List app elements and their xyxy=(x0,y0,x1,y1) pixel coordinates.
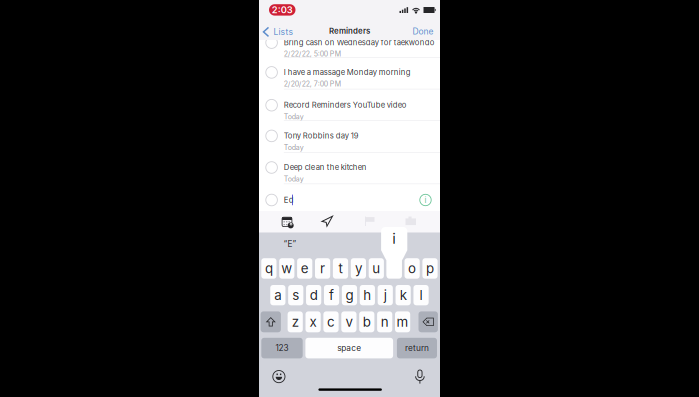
staticText: “E” xyxy=(283,239,296,249)
staticText: Tony Robbins day 19 xyxy=(284,131,359,140)
staticText: Done xyxy=(412,26,433,37)
button[interactable]: w xyxy=(279,258,294,279)
button[interactable]: o xyxy=(404,258,420,279)
staticText: return xyxy=(405,343,429,353)
staticText: m xyxy=(397,314,409,330)
button[interactable]: z xyxy=(288,311,303,332)
button[interactable]: Emoji xyxy=(273,370,285,383)
button[interactable]: Lists xyxy=(262,26,298,37)
staticText: o xyxy=(408,260,416,276)
staticText: Today xyxy=(284,112,304,121)
staticText: z xyxy=(292,314,299,330)
staticText: t xyxy=(338,260,342,276)
staticText: q xyxy=(265,260,273,276)
staticText: 2/20/22, 7:00 PM xyxy=(284,80,341,88)
button[interactable]: a xyxy=(270,285,285,305)
staticText: u xyxy=(372,260,380,276)
staticText: i xyxy=(392,230,396,247)
staticText: a xyxy=(274,287,281,303)
button[interactable]: r xyxy=(315,258,330,279)
staticText: x xyxy=(310,314,317,330)
staticText: I have a massage Monday morning xyxy=(284,68,411,77)
staticText: n xyxy=(381,314,389,330)
staticText: h xyxy=(363,287,371,303)
button[interactable]: Date and time xyxy=(281,215,293,227)
button[interactable]: u xyxy=(369,258,384,279)
staticText: v xyxy=(345,314,352,330)
button[interactable]: e xyxy=(297,258,312,279)
staticText: y xyxy=(355,260,362,276)
button[interactable]: f xyxy=(324,285,339,305)
button[interactable]: k xyxy=(395,285,411,305)
button[interactable]: return xyxy=(397,338,437,358)
staticText: Lists xyxy=(273,27,293,37)
staticText: w xyxy=(281,260,292,276)
button[interactable]: space xyxy=(305,338,393,358)
button[interactable]: b xyxy=(359,311,374,332)
staticText: Ed xyxy=(284,195,294,205)
button[interactable]: s xyxy=(288,285,303,305)
button[interactable]: y xyxy=(351,258,366,279)
button[interactable]: h xyxy=(360,285,375,305)
staticText: 123 xyxy=(275,343,288,353)
staticText: p xyxy=(426,260,434,276)
button[interactable]: d xyxy=(306,285,321,305)
staticText: f xyxy=(329,287,334,303)
staticText: g xyxy=(345,287,353,303)
button[interactable]: j xyxy=(378,285,393,305)
button[interactable]: g xyxy=(342,285,357,305)
button[interactable]: 123 xyxy=(261,338,303,358)
button[interactable]: p xyxy=(422,258,438,279)
button[interactable]: t xyxy=(333,258,348,279)
staticText: Record Reminders YouTube video xyxy=(284,100,407,110)
button[interactable]: Details xyxy=(420,194,431,206)
staticText: j xyxy=(384,287,387,303)
staticText: Reminders xyxy=(329,26,370,36)
staticText: l xyxy=(420,287,423,303)
staticText: Bring cash on Wednesday for taekwondo xyxy=(284,38,435,47)
button[interactable]: q xyxy=(261,258,276,279)
staticText: e xyxy=(301,260,309,276)
button[interactable]: Shift xyxy=(261,311,281,332)
staticText: b xyxy=(363,314,371,330)
staticText: k xyxy=(400,287,407,303)
button[interactable]: m xyxy=(395,311,410,332)
button[interactable]: n xyxy=(377,311,392,332)
button[interactable]: Add image xyxy=(405,216,416,226)
button[interactable]: Flag xyxy=(365,216,374,226)
button[interactable]: v xyxy=(341,311,356,332)
staticText: 2/22/22, 5:00 PM xyxy=(284,50,341,58)
staticText: c xyxy=(327,314,335,330)
staticText: Deep clean the kitchen xyxy=(284,163,367,172)
button[interactable]: Done xyxy=(400,26,433,37)
button[interactable]: Location xyxy=(322,216,332,226)
staticText: 2:03 xyxy=(272,4,293,16)
button[interactable]: l xyxy=(413,285,429,305)
staticText: d xyxy=(310,287,318,303)
staticText: r xyxy=(320,260,325,276)
button[interactable]: Delete xyxy=(418,311,438,332)
staticText: Today xyxy=(284,175,304,183)
button[interactable]: x xyxy=(305,311,321,332)
button[interactable]: c xyxy=(323,311,339,332)
button[interactable]: Dictation xyxy=(415,370,425,384)
staticText: s xyxy=(292,287,299,303)
staticText: i xyxy=(424,195,426,205)
staticText: space xyxy=(337,343,361,353)
staticText: Today xyxy=(284,143,304,152)
button[interactable]: i xyxy=(387,258,402,279)
